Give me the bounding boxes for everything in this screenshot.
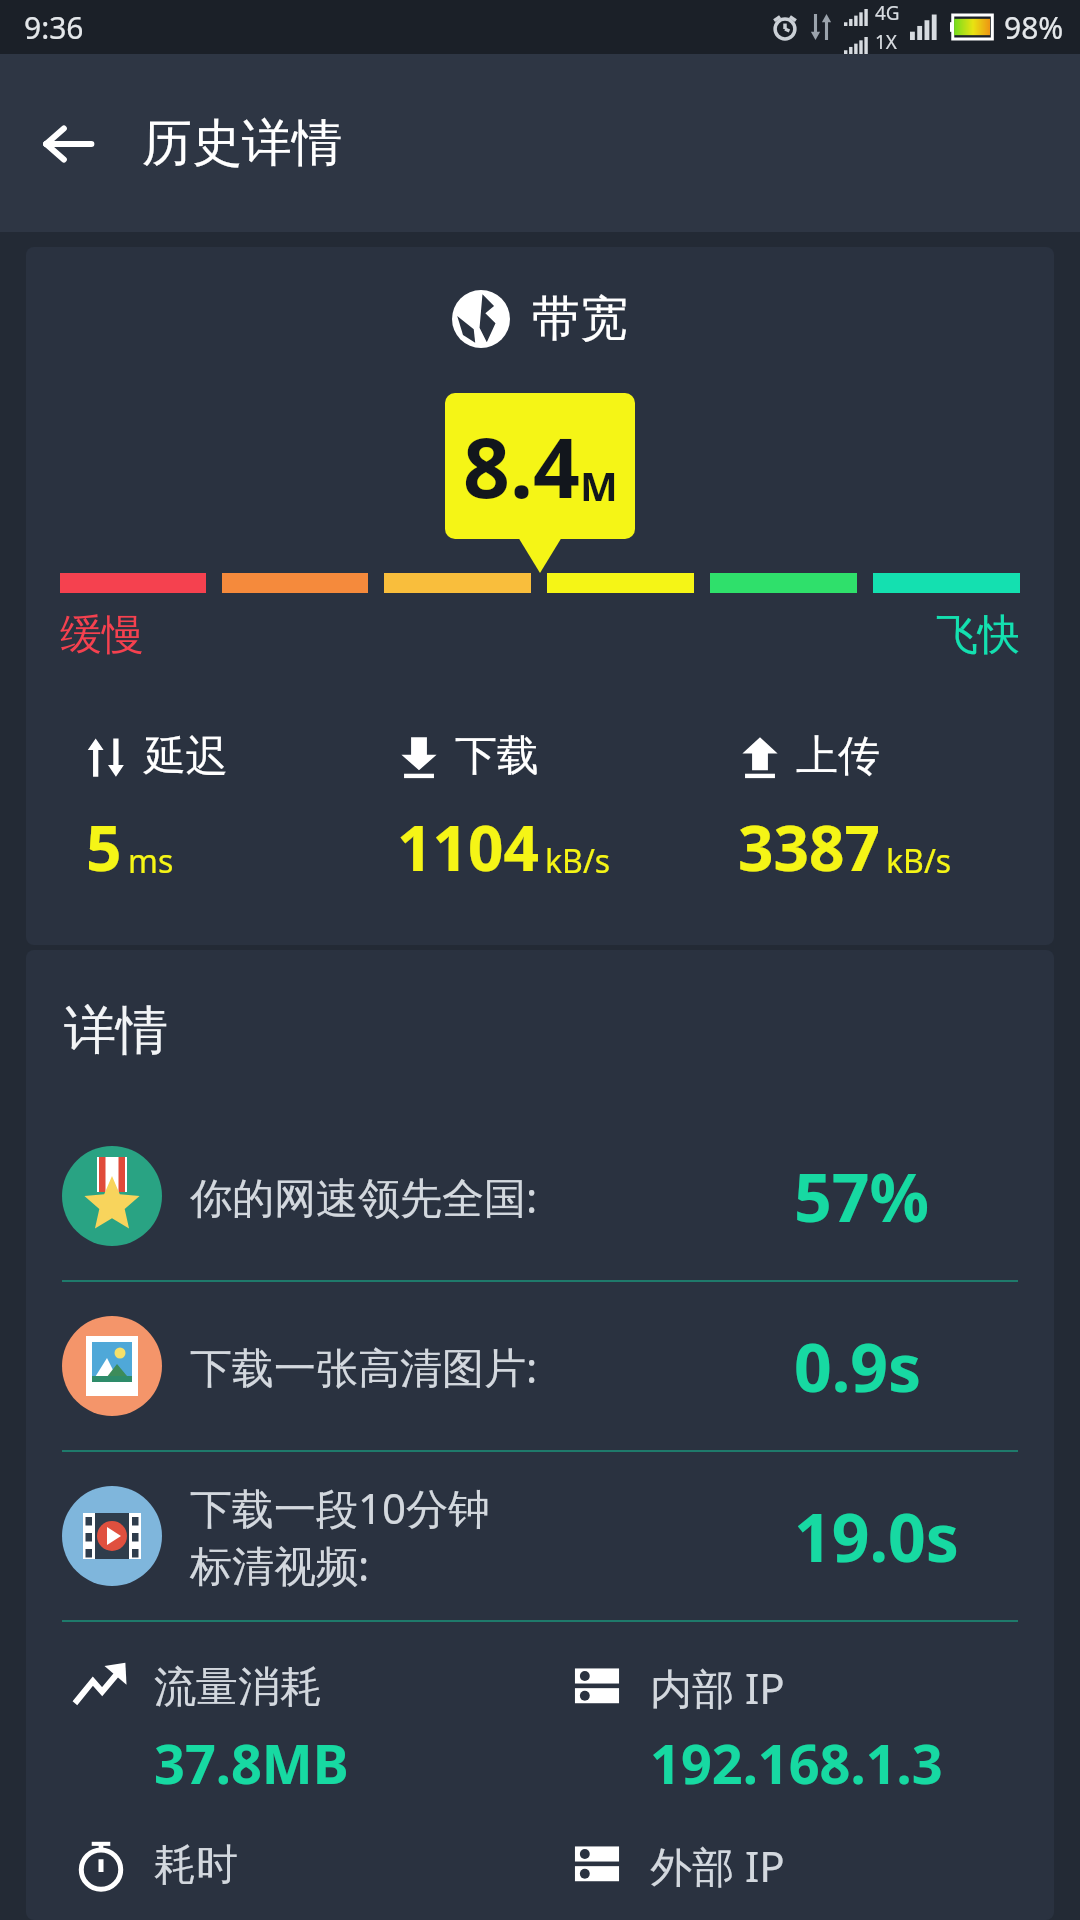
staticText: 98% — [1004, 7, 1064, 48]
button[interactable]: 你的网速领先全国: — [26, 1112, 1054, 1280]
button[interactable]: 下载一段10分钟 — [26, 1452, 1054, 1620]
staticText: 延迟 — [144, 730, 228, 783]
staticText: 你的网速领先全国: — [190, 1168, 538, 1225]
staticText: 8.4 — [463, 410, 580, 522]
staticText: 1X — [875, 29, 898, 54]
button[interactable]: 下载一张高清图片: — [26, 1282, 1054, 1450]
staticText: 上传 — [796, 730, 880, 783]
staticText: 19.0s — [794, 1491, 1024, 1581]
staticText: 内部 IP — [650, 1659, 785, 1716]
staticText: 37.8MB — [154, 1726, 349, 1800]
staticText: 标清视频: — [190, 1536, 370, 1593]
staticText: 带宽 — [532, 289, 628, 349]
staticText: 9:36 — [24, 7, 84, 48]
staticText: 流量消耗 — [154, 1661, 322, 1714]
staticText: ms — [128, 839, 174, 883]
staticText: kB/s — [886, 839, 952, 883]
staticText: 下载一张高清图片: — [190, 1338, 538, 1395]
staticText: M — [580, 458, 618, 512]
staticText: 缓慢 — [60, 609, 144, 662]
staticText: 耗时 — [154, 1839, 238, 1892]
button[interactable]: Back — [38, 114, 98, 174]
staticText: kB/s — [545, 839, 611, 883]
staticText: 详情 — [64, 998, 168, 1064]
staticText: 历史详情 — [142, 112, 342, 175]
staticText: 0.9s — [794, 1321, 1024, 1411]
staticText: 3387 — [738, 805, 880, 889]
staticText: 1104 — [397, 805, 539, 889]
staticText: 飞快 — [936, 609, 1020, 662]
staticText: 下载一段10分钟 — [190, 1479, 491, 1536]
staticText: 192.168.1.3 — [650, 1726, 943, 1800]
staticText: 5 — [86, 805, 122, 889]
staticText: 下载 — [455, 730, 539, 783]
staticText: 57% — [794, 1151, 1024, 1241]
staticText: 外部 IP — [650, 1837, 785, 1894]
staticText: 4G — [875, 0, 900, 26]
